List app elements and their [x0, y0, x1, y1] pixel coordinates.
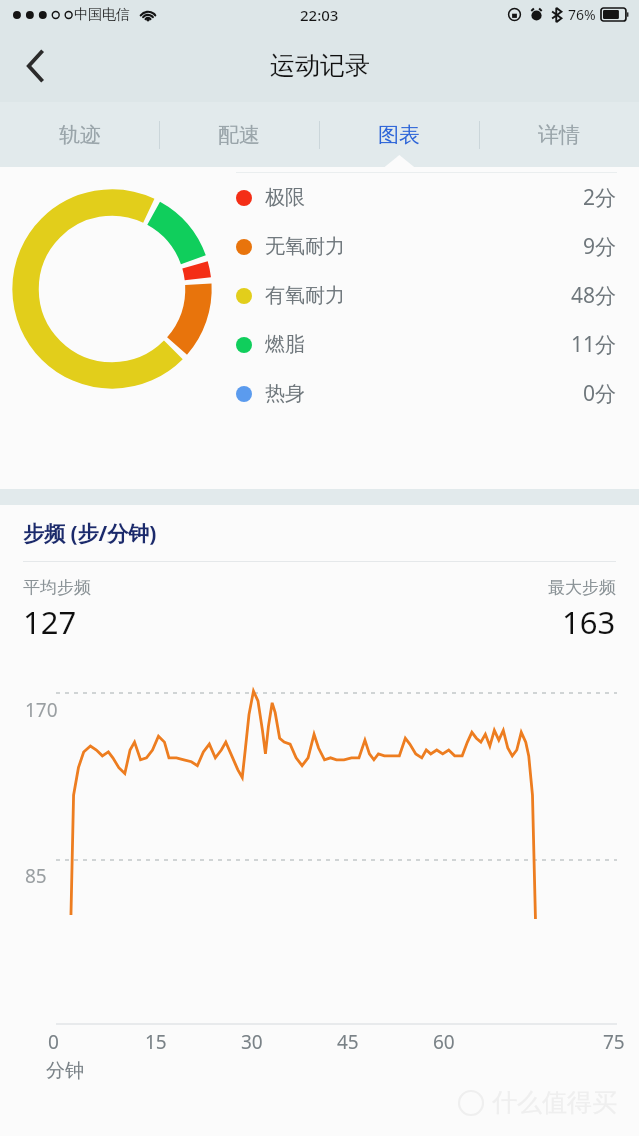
staticText: 轨迹 — [59, 122, 101, 148]
staticText: 最大步频 — [548, 577, 616, 598]
staticText: 76% — [568, 5, 596, 24]
button[interactable]: 无氧耐力 — [236, 222, 617, 271]
staticText: 热身 — [265, 381, 305, 406]
staticText: 分钟 — [46, 1059, 84, 1083]
staticText: 75 — [603, 1029, 625, 1055]
button[interactable]: 热身 — [236, 369, 617, 418]
staticText: 85 — [25, 863, 47, 889]
button[interactable]: 燃脂 — [236, 320, 617, 369]
button[interactable]: 返回 — [6, 36, 66, 96]
staticText: 45 — [337, 1029, 359, 1055]
button[interactable]: 详情 — [479, 102, 639, 167]
staticText: 11分 — [571, 330, 617, 359]
button[interactable]: 轨迹 — [0, 102, 159, 167]
staticText: 9分 — [583, 232, 617, 261]
staticText: 有氧耐力 — [265, 283, 345, 308]
staticText: 170 — [25, 697, 58, 723]
staticText: 48分 — [571, 281, 617, 310]
staticText: 详情 — [538, 122, 580, 148]
staticText: 运动记录 — [270, 50, 370, 81]
button[interactable]: 有氧耐力 — [236, 271, 617, 320]
staticText: 燃脂 — [265, 332, 305, 357]
staticText: 15 — [145, 1029, 167, 1055]
staticText: 0分 — [583, 379, 617, 408]
staticText: 图表 — [378, 122, 420, 148]
button[interactable]: 配速 — [159, 102, 319, 167]
button[interactable]: 图表 — [319, 102, 479, 167]
staticText: 163 — [562, 601, 616, 643]
staticText: 中国电信 — [74, 6, 130, 24]
staticText: 0 — [48, 1029, 59, 1055]
button[interactable]: 极限 — [236, 173, 617, 222]
staticText: 平均步频 — [23, 577, 91, 598]
staticText: 127 — [23, 601, 77, 643]
staticText: 配速 — [218, 122, 260, 148]
staticText: 无氧耐力 — [265, 234, 345, 259]
staticText: 什么值得买 — [492, 1087, 617, 1118]
staticText: 2分 — [583, 183, 617, 212]
staticText: 22:03 — [300, 5, 339, 25]
staticText: 60 — [433, 1029, 455, 1055]
staticText: 极限 — [265, 185, 305, 210]
staticText: 30 — [241, 1029, 263, 1055]
staticText: 步频 (步/分钟) — [23, 519, 157, 548]
